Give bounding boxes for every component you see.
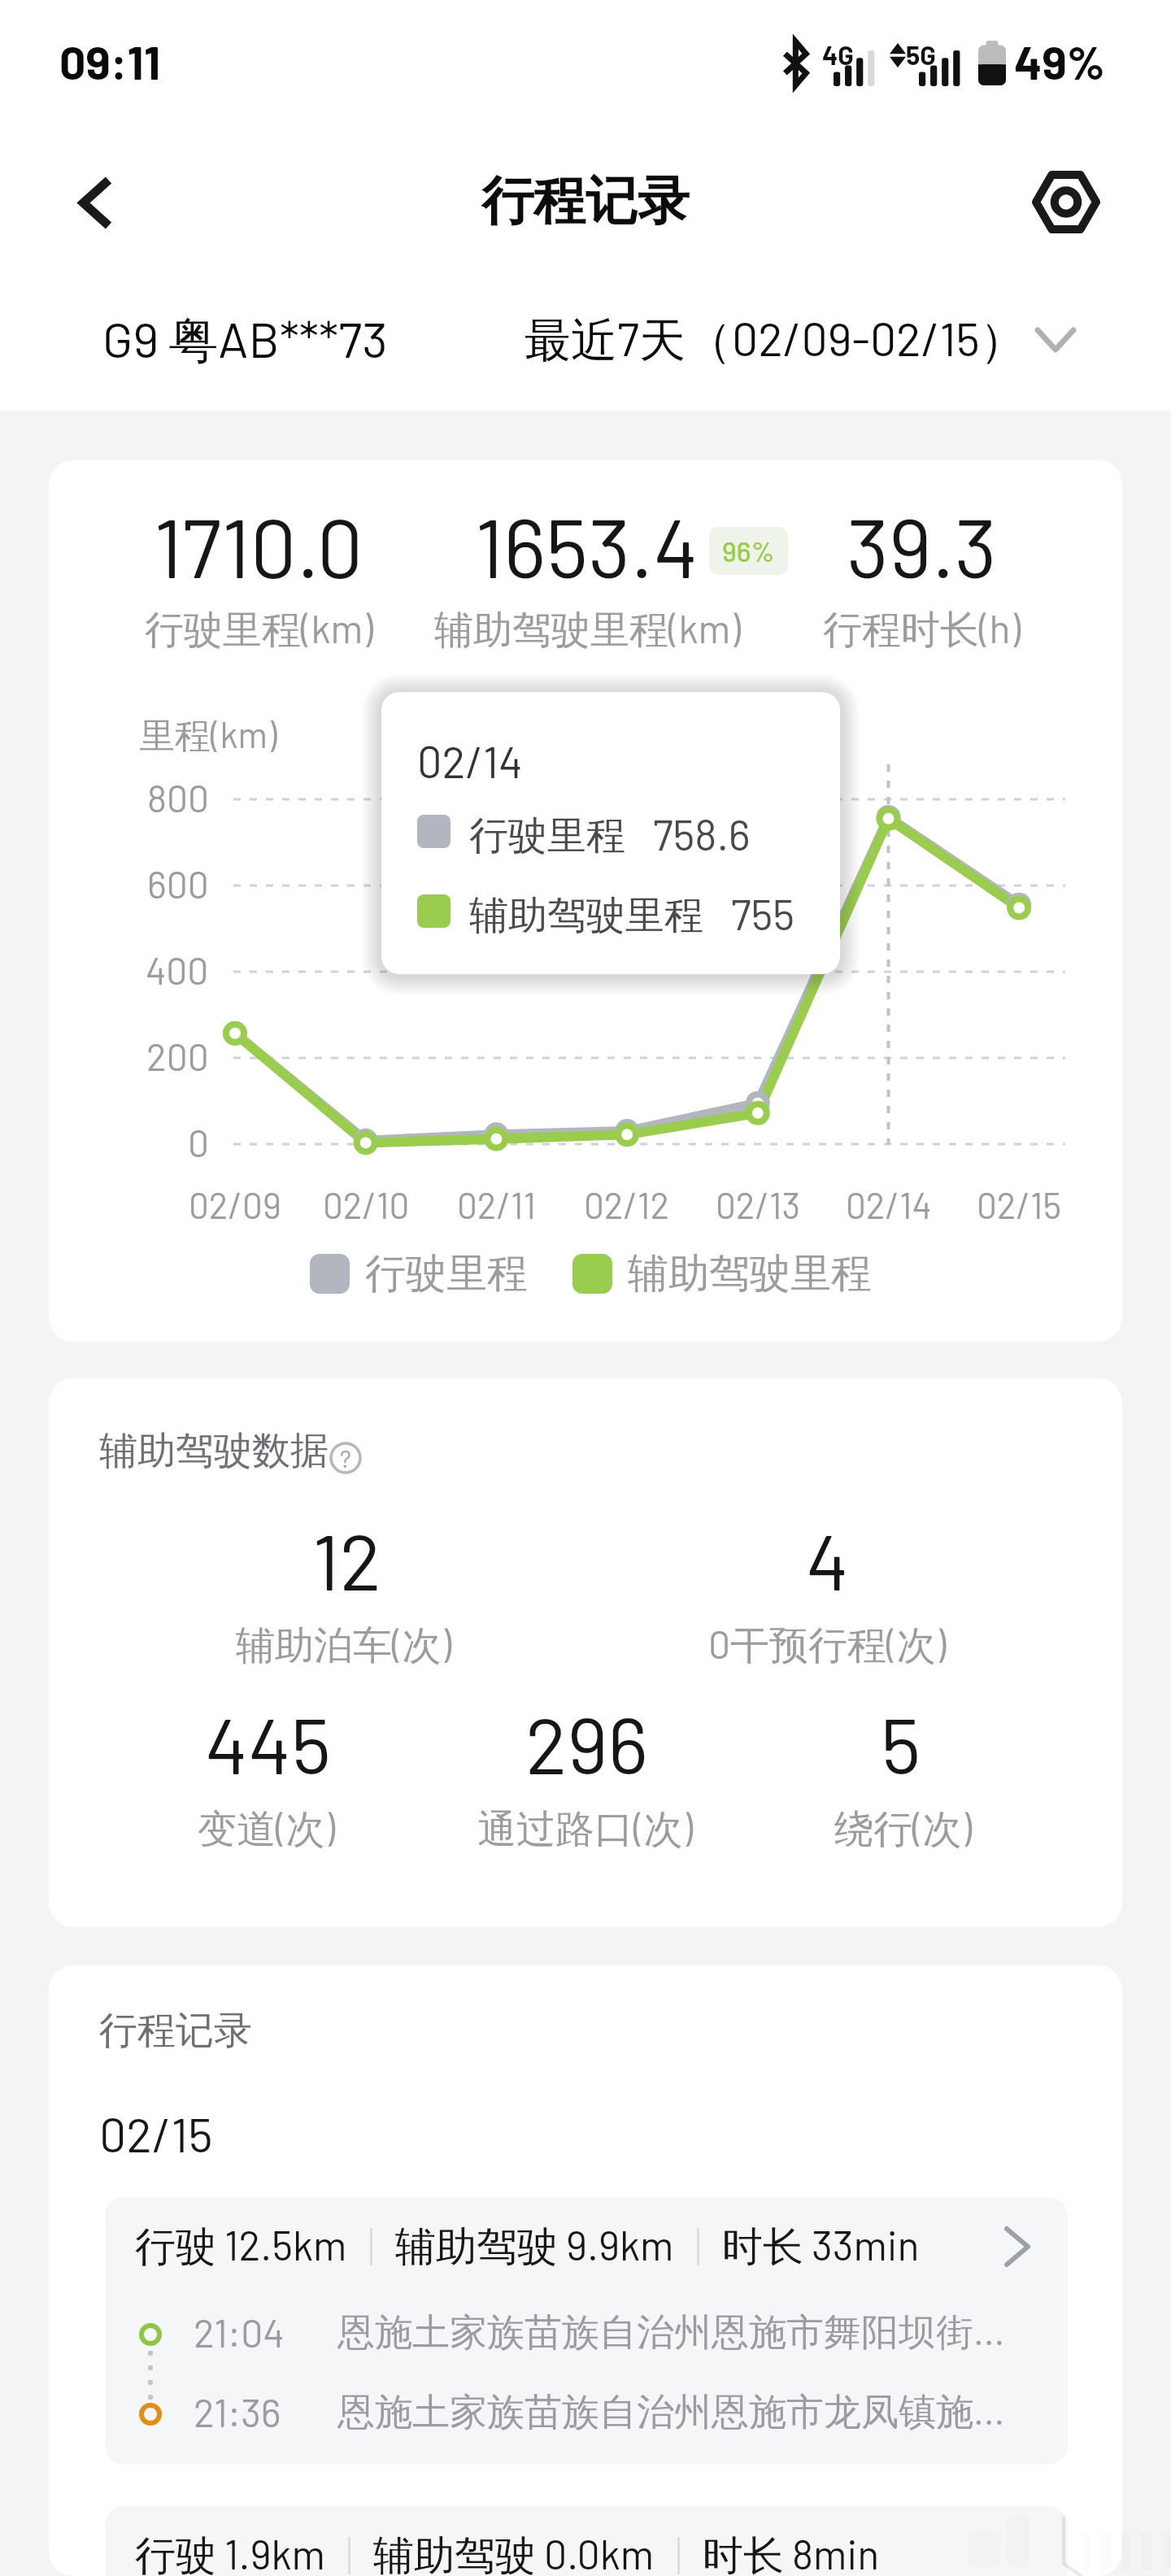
staticText: 辅助驾驶 0.0km xyxy=(373,2529,655,2576)
staticText: 恩施土家族苗族自治州恩施市龙凤镇施... xyxy=(337,2387,1005,2436)
staticText: 4G xyxy=(822,39,854,70)
staticText: 通过路口(次) xyxy=(477,1804,694,1854)
staticText: 02/11 xyxy=(457,1183,536,1226)
staticText: 行驶里程(km) xyxy=(145,604,373,655)
staticText: 行驶里程 xyxy=(365,1248,528,1299)
staticText: 21:36 xyxy=(194,2388,281,2435)
staticText: 200 xyxy=(146,1033,209,1078)
staticText: 02/13 xyxy=(716,1183,801,1226)
staticText: 0 xyxy=(188,1120,209,1164)
staticText: 辅助驾驶 9.9km xyxy=(395,2220,674,2273)
staticText: 辅助泊车(次) xyxy=(236,1620,452,1670)
staticText: G9 粤AB***73 xyxy=(102,308,388,372)
staticText: 行驶 12.5km xyxy=(135,2220,347,2273)
button[interactable]: 行驶 1.9km xyxy=(105,2506,1068,2576)
staticText: 时长 33min xyxy=(722,2220,920,2273)
staticText: 96% xyxy=(722,534,775,568)
staticText: 行驶里程 xyxy=(469,812,625,860)
staticText: 02/14 xyxy=(846,1183,932,1226)
button[interactable]: G9 粤AB***73 xyxy=(102,299,388,381)
button[interactable]: Settings xyxy=(1021,156,1112,247)
staticText: 最近7天（02/09-02/15） xyxy=(525,310,1026,370)
staticText: 02/15 xyxy=(977,1183,1062,1226)
staticText: 0干预行程(次) xyxy=(708,1620,947,1670)
other: Open trip xyxy=(1007,2229,1028,2265)
button[interactable]: 行驶 12.5km xyxy=(105,2197,1068,2465)
staticText: 行程时长(h) xyxy=(823,604,1021,655)
staticText: 296 xyxy=(525,1696,648,1790)
staticText: 4 xyxy=(806,1512,849,1606)
staticText: 变道(次) xyxy=(198,1804,336,1854)
staticText: 辅助驾驶里程 xyxy=(628,1248,872,1299)
button[interactable]: Back xyxy=(50,157,141,248)
staticText: 09:11 xyxy=(59,33,161,89)
staticText: 辅助驾驶数据 xyxy=(99,1427,329,1475)
staticText: 里程(km) xyxy=(139,712,277,759)
staticText: 行程记录 xyxy=(481,168,690,234)
staticText: 12 xyxy=(312,1512,382,1606)
staticText: 时长 8min xyxy=(703,2529,880,2576)
staticText: 400 xyxy=(146,947,209,992)
staticText: 辅助驾驶里程(km) xyxy=(434,604,741,655)
staticText: 1710.0 xyxy=(154,496,363,594)
staticText: 02/15 xyxy=(99,2104,213,2162)
staticText: 445 xyxy=(205,1696,332,1790)
staticText: 绕行(次) xyxy=(834,1804,973,1854)
staticText: 02/12 xyxy=(584,1183,670,1226)
staticText: 1653.4 xyxy=(475,496,699,594)
staticText: 21:04 xyxy=(194,2308,285,2356)
staticText: 49% xyxy=(1014,33,1105,89)
staticText: ? xyxy=(340,1443,351,1473)
staticText: 755 xyxy=(731,888,795,938)
staticText: 39.3 xyxy=(847,496,997,594)
staticText: 800 xyxy=(147,775,209,820)
staticText: 5 xyxy=(881,1696,921,1790)
staticText: 5G xyxy=(906,39,936,70)
staticText: 02/10 xyxy=(323,1183,410,1226)
button[interactable]: 最近7天（02/09-02/15） xyxy=(525,299,1073,381)
staticText: 02/09 xyxy=(189,1183,281,1226)
staticText: 辅助驾驶里程 xyxy=(469,891,703,940)
staticText: 行驶 1.9km xyxy=(135,2529,325,2576)
staticText: 行程记录 xyxy=(99,2007,252,2055)
staticText: 恩施土家族苗族自治州恩施市舞阳坝街... xyxy=(337,2308,1005,2356)
staticText: 02/14 xyxy=(417,734,523,787)
staticText: 600 xyxy=(147,861,209,906)
staticText: 758.6 xyxy=(653,808,751,859)
